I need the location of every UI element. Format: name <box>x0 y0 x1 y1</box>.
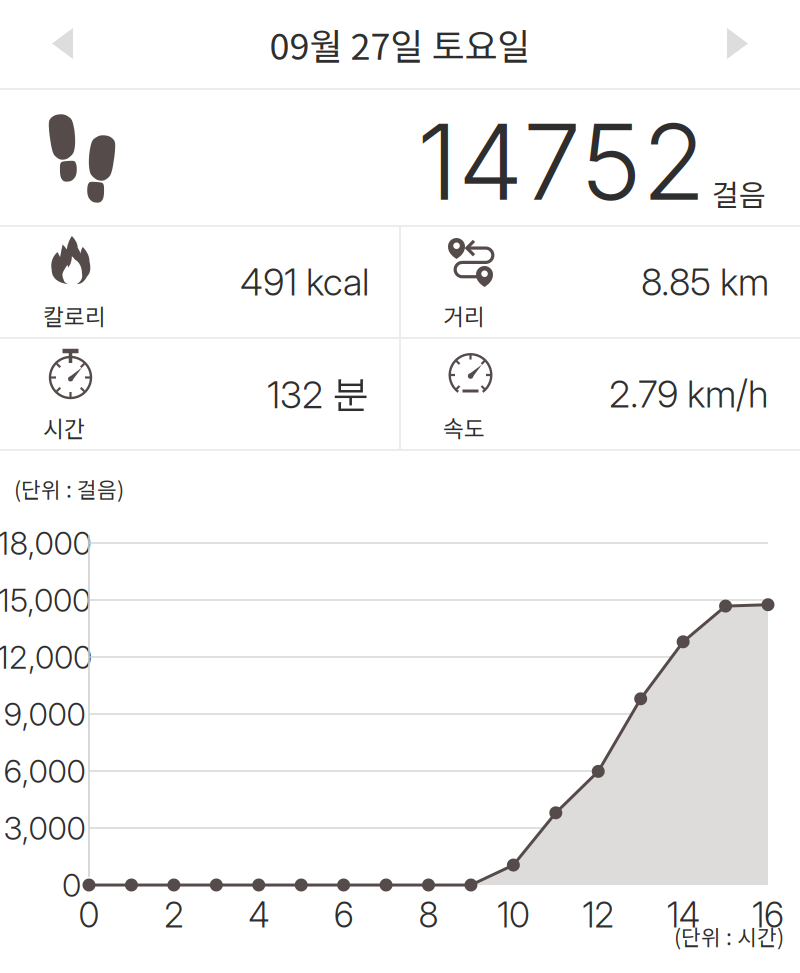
staticText: 12,000 <box>0 638 92 676</box>
staticText: 14 <box>667 894 700 936</box>
staticText: 거리 <box>443 299 485 332</box>
staticText: 8.85 km <box>641 259 769 305</box>
staticText: 14752 <box>417 99 706 225</box>
staticText: 132 분 <box>267 370 369 417</box>
staticText: 4 <box>248 894 269 936</box>
staticText: 491 kcal <box>240 259 369 305</box>
staticText: 2.79 km/h <box>609 371 769 417</box>
staticText: 09월 27일 토요일 <box>269 18 530 70</box>
button[interactable]: 속도 <box>401 339 799 449</box>
staticText: 3,000 <box>3 809 85 847</box>
staticText: 18,000 <box>0 524 91 562</box>
staticText: 2 <box>164 894 184 936</box>
staticText: 9,000 <box>3 695 85 733</box>
staticText: 0 <box>62 866 81 904</box>
staticText: 6,000 <box>3 752 85 790</box>
staticText: 12 <box>582 894 614 936</box>
button[interactable]: 시간 <box>1 339 399 449</box>
staticText: 칼로리 <box>43 299 106 332</box>
staticText: 8 <box>418 894 438 936</box>
staticText: 0 <box>78 894 99 936</box>
staticText: 걸음 <box>712 172 766 214</box>
staticText: (단위 : 걸음) <box>14 473 124 504</box>
staticText: 시간 <box>43 411 85 444</box>
staticText: 10 <box>497 894 530 936</box>
button[interactable]: Previous day <box>0 0 104 88</box>
staticText: 15,000 <box>0 581 91 619</box>
staticText: 16 <box>752 894 784 936</box>
staticText: (단위 : 시간) <box>674 921 784 951</box>
button[interactable]: 거리 <box>401 227 799 337</box>
staticText: 6 <box>334 894 354 936</box>
staticText: 속도 <box>443 411 485 444</box>
button[interactable]: 칼로리 <box>1 227 399 337</box>
button[interactable]: Next day <box>696 0 800 88</box>
